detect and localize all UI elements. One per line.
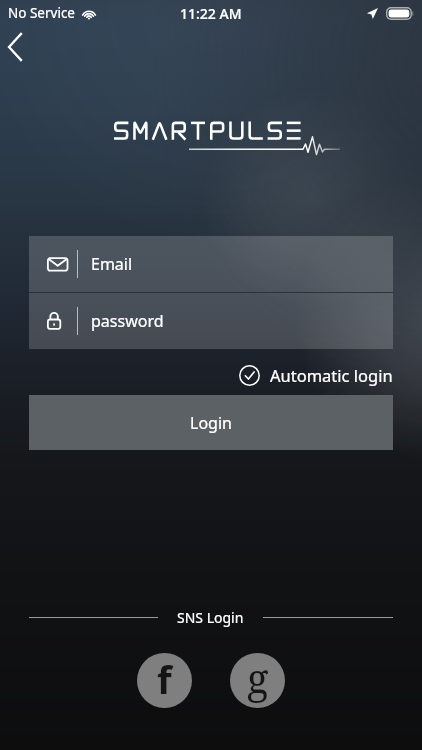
button[interactable]: password: [29, 293, 393, 349]
button[interactable]: Email: [29, 236, 393, 292]
staticText: password: [91, 310, 164, 332]
button[interactable]: Google login: [230, 653, 285, 708]
staticText: Login: [190, 412, 232, 434]
button[interactable]: Login: [29, 395, 393, 450]
staticText: SNS Login: [177, 608, 244, 627]
button[interactable]: Automatic login: [236, 358, 396, 392]
staticText: g: [247, 653, 269, 704]
staticText: Automatic login: [270, 364, 393, 386]
button[interactable]: Back: [0, 26, 44, 68]
staticText: 11:22 AM: [180, 4, 242, 23]
staticText: No Service: [8, 4, 75, 22]
staticText: Email: [91, 253, 133, 275]
button[interactable]: Facebook login: [137, 653, 192, 708]
staticText: f: [157, 653, 172, 705]
